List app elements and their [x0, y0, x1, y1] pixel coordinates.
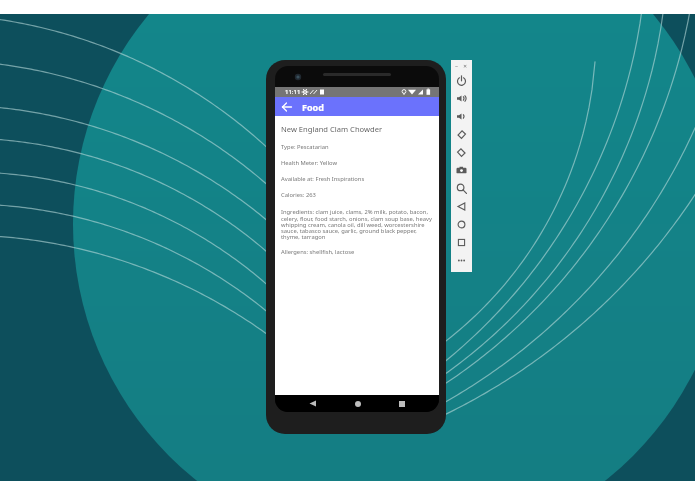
button[interactable]: Overview: [451, 233, 472, 251]
button[interactable]: More: [451, 251, 472, 269]
staticText: Available at: Fresh Inspirations: [281, 175, 365, 183]
button[interactable]: Home: [451, 215, 472, 233]
staticText: –: [455, 62, 459, 70]
button[interactable]: Recent apps: [394, 396, 409, 411]
button[interactable]: Power: [451, 71, 472, 89]
button[interactable]: Back: [451, 197, 472, 215]
button[interactable]: Zoom: [451, 179, 472, 197]
button[interactable]: Volume up: [451, 89, 472, 107]
staticText: Health Meter: Yellow: [281, 159, 338, 167]
staticText: ✕: [463, 63, 468, 69]
staticText: 11:11: [285, 88, 301, 96]
button[interactable]: Home: [350, 396, 365, 411]
button[interactable]: Rotate right: [451, 143, 472, 161]
staticText: Calories: 263: [281, 191, 316, 199]
staticText: Ingredients: clam juice, clams, 2% milk,…: [281, 208, 432, 241]
button[interactable]: Back: [305, 396, 320, 411]
staticText: Type: Pescatarian: [281, 143, 329, 151]
staticText: Allergens: shellfish, lactose: [281, 248, 355, 256]
staticText: New England Clam Chowder: [281, 124, 383, 134]
button[interactable]: Volume down: [451, 107, 472, 125]
button[interactable]: Rotate left: [451, 125, 472, 143]
button[interactable]: Screenshot: [451, 161, 472, 179]
button[interactable]: Back: [280, 100, 294, 114]
staticText: Food: [302, 101, 324, 113]
